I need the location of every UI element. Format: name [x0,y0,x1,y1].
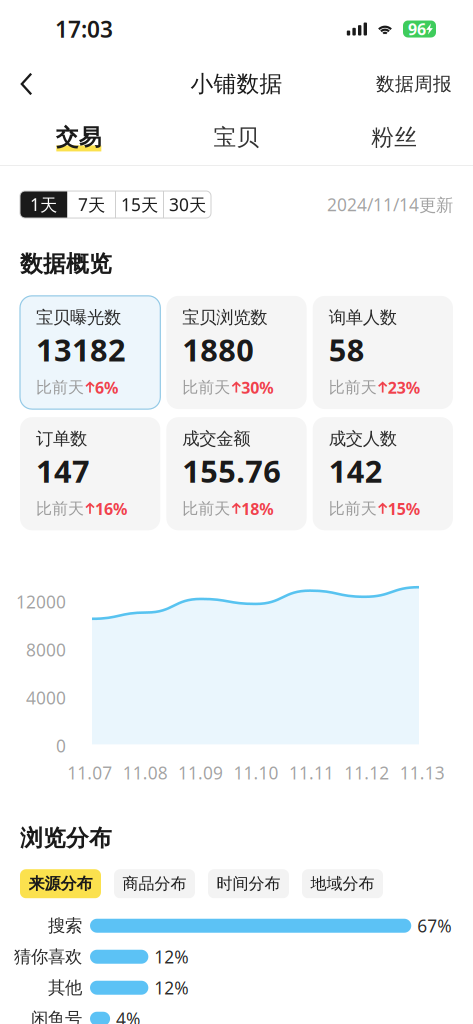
staticText: 11.09 [178,761,223,784]
staticText: 交易 [56,124,102,151]
staticText: 比前天 [36,378,84,397]
staticText: 成交人数 [329,428,397,449]
staticText: 商品分布 [122,874,186,894]
staticText: 11.12 [344,761,389,784]
staticText: 比前天 [182,378,230,397]
staticText: 比前天 [329,378,377,397]
button[interactable]: 成交人数 [313,417,453,530]
staticText: 12% [154,945,188,968]
staticText: 浏览分布 [20,824,112,852]
button[interactable]: 15天 [116,191,163,218]
button[interactable]: 粉丝 [315,110,473,165]
button[interactable]: 宝贝曝光数 [20,296,160,409]
staticText: 其他 [48,977,82,998]
staticText: 96 [408,18,426,40]
button[interactable]: 7天 [68,191,115,218]
staticText: 142 [329,450,383,491]
staticText: 4000 [26,686,66,709]
staticText: 11.08 [123,761,168,784]
button[interactable]: 地域分布 [302,869,383,898]
staticText: 13182 [36,329,126,370]
staticText: 23% [388,377,420,398]
button[interactable]: 询单人数 [313,296,453,409]
staticText: 2024/11/14更新 [327,193,453,216]
staticText: 15天 [121,193,158,216]
staticText: 12000 [16,590,66,613]
staticText: 小铺数据 [190,70,282,98]
staticText: 时间分布 [216,874,280,894]
staticText: 30天 [169,193,206,216]
staticText: 宝贝浏览数 [182,307,267,328]
button[interactable]: 返回 [0,58,49,110]
button[interactable]: 宝贝 [158,110,315,165]
staticText: 闲鱼号 [31,1008,82,1024]
staticText: 58 [329,329,365,370]
button[interactable]: 成交金额 [166,417,307,530]
button[interactable]: 交易 [0,110,158,165]
staticText: 来源分布 [28,874,92,894]
staticText: 粉丝 [371,124,417,151]
staticText: 比前天 [329,499,377,519]
staticText: 15% [388,498,420,519]
button[interactable]: 30天 [164,191,211,218]
staticText: 比前天 [182,499,230,519]
staticText: 比前天 [36,499,84,519]
staticText: 宝贝 [213,124,259,151]
button[interactable]: 来源分布 [20,869,101,898]
staticText: 18% [241,498,273,519]
staticText: 订单数 [36,428,87,449]
staticText: 成交金额 [182,428,250,449]
staticText: 11.11 [289,761,334,784]
staticText: 30% [241,377,273,398]
staticText: 67% [417,914,451,937]
staticText: 地域分布 [310,874,374,894]
staticText: 11.10 [233,761,278,784]
button[interactable]: 时间分布 [208,869,289,898]
staticText: 搜索 [48,915,82,936]
staticText: 猜你喜欢 [14,946,82,967]
staticText: 询单人数 [329,307,397,328]
staticText: 16% [95,498,127,519]
button[interactable]: 商品分布 [114,869,195,898]
button[interactable]: 数据周报 [360,58,473,110]
staticText: 155.76 [182,450,281,491]
staticText: 数据周报 [376,72,452,95]
button[interactable]: 宝贝浏览数 [166,296,307,409]
staticText: 0 [56,734,66,757]
staticText: 6% [95,377,118,398]
staticText: 7天 [78,193,105,216]
button[interactable]: 1天 [20,191,67,218]
staticText: 1880 [182,329,254,370]
staticText: 147 [36,450,90,491]
staticText: 11.07 [67,761,112,784]
staticText: 1天 [30,193,57,216]
staticText: 12% [154,976,188,999]
staticText: 4% [116,1007,140,1024]
staticText: 17:03 [55,14,113,44]
staticText: 11.13 [400,761,445,784]
staticText: 8000 [26,638,66,661]
staticText: 数据概览 [20,250,112,278]
staticText: 宝贝曝光数 [36,307,121,328]
button[interactable]: 订单数 [20,417,160,530]
